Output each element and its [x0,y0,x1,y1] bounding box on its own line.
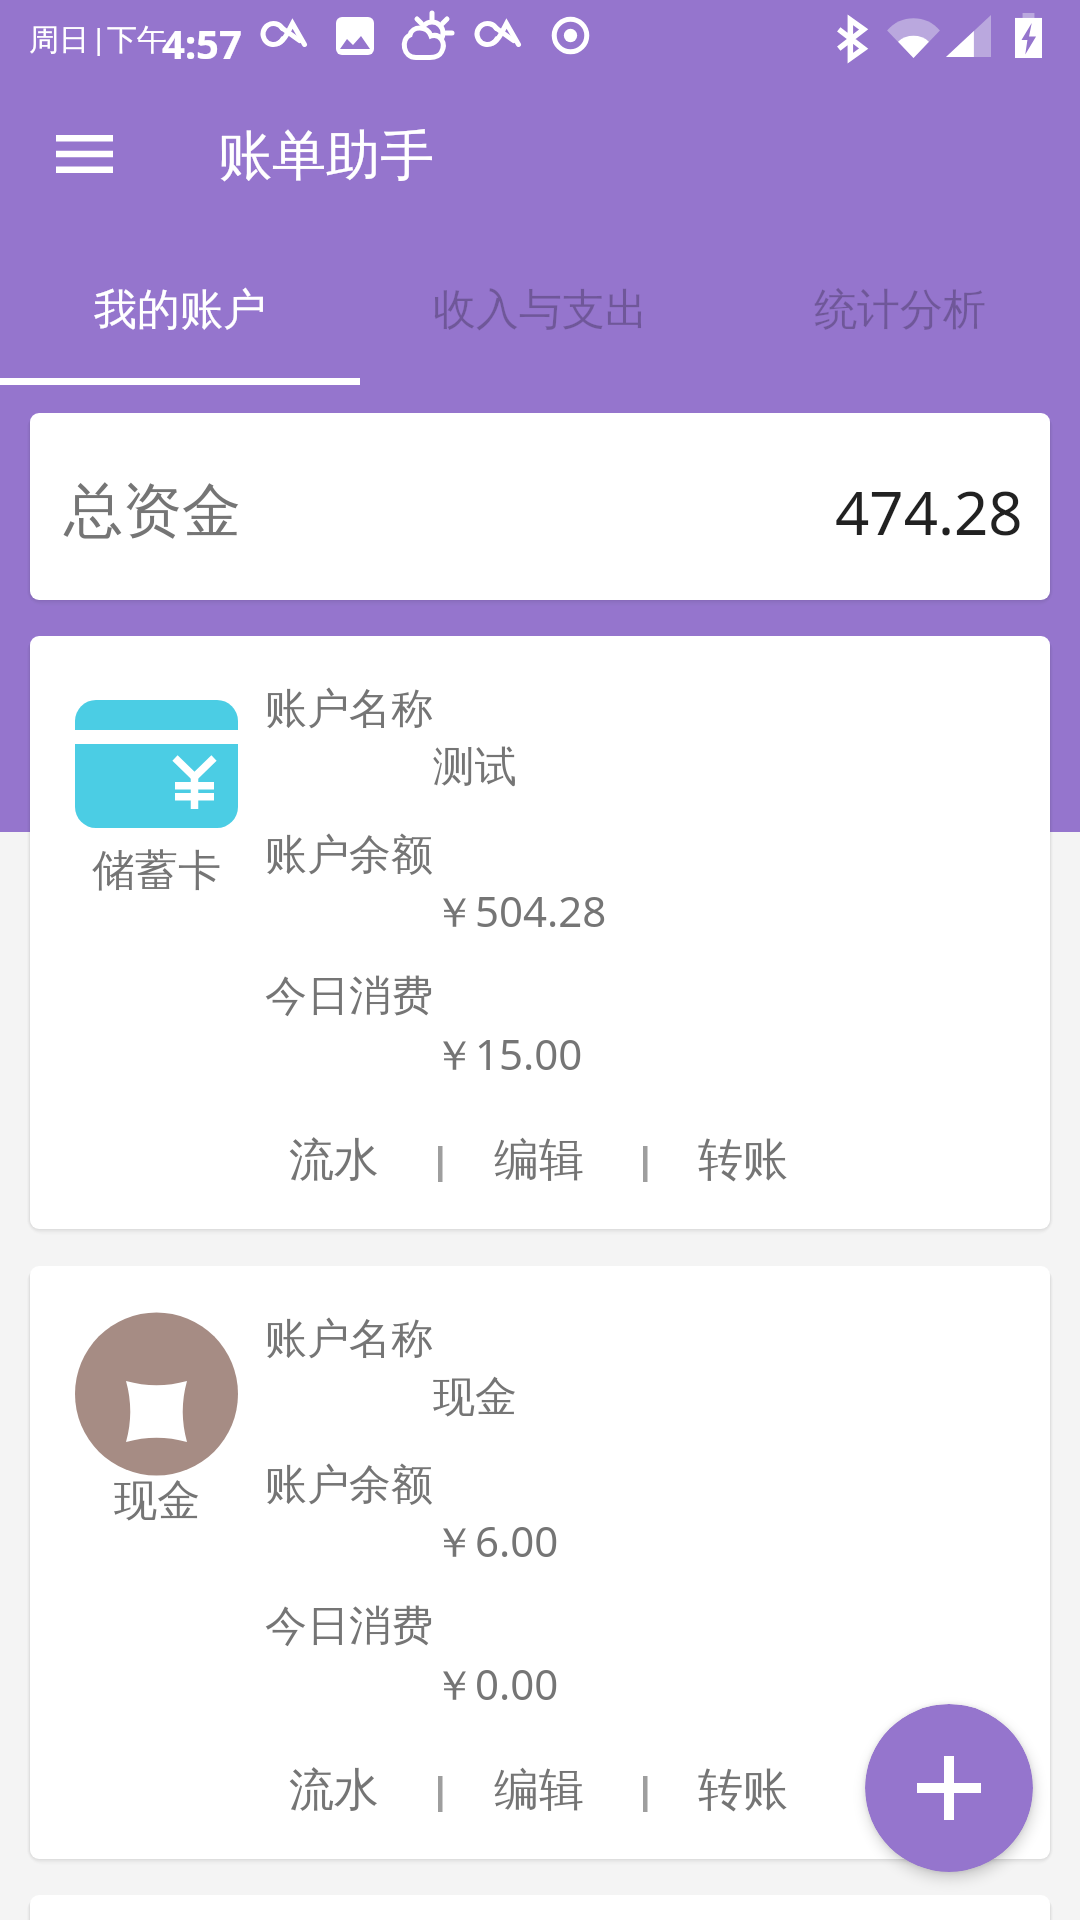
staticText: 转账 [698,1762,788,1819]
staticText: 统计分析 [814,283,986,337]
button[interactable]: 编辑 [478,1117,600,1203]
staticText: ￥6.00 [433,1512,559,1569]
button[interactable]: Add account [865,1704,1033,1872]
staticText: 474.28 [835,471,1023,553]
staticText: 收入与支出 [433,283,648,337]
staticText: 测试 [433,741,517,794]
staticText: 现金 [114,1474,200,1528]
staticText: 编辑 [494,1762,584,1819]
staticText: 账户余额 [265,829,433,882]
button[interactable]: 统计分析 [720,248,1080,371]
staticText: ￥15.00 [433,1025,583,1082]
button[interactable]: 编辑 [478,1747,600,1833]
button[interactable]: 收入与支出 [360,248,720,371]
staticText: 账户名称 [265,1313,433,1366]
button[interactable]: Menu [40,110,128,198]
staticText: 账户名称 [265,683,433,736]
staticText: 周日 [29,21,89,59]
staticText: 转账 [698,1132,788,1189]
staticText: 4:57 [162,16,242,70]
staticText: ￥0.00 [433,1655,559,1712]
staticText: 账户余额 [265,1459,433,1512]
staticText: 储蓄卡 [92,844,221,898]
staticText: 编辑 [494,1132,584,1189]
button[interactable]: 现金 [30,1266,1050,1859]
button[interactable]: 流水 [273,1747,395,1833]
button[interactable]: 储蓄卡 [30,636,1050,1229]
staticText: 今日消费 [265,1600,433,1653]
staticText: 下午 [107,21,167,59]
staticText: 现金 [433,1371,517,1424]
staticText: 账单助手 [218,122,434,190]
button[interactable]: 转账 [682,1747,804,1833]
staticText: 流水 [289,1132,379,1189]
staticText: 流水 [289,1762,379,1819]
button[interactable]: 总资金 [30,413,1050,600]
staticText: 我的账户 [94,283,266,337]
button[interactable]: 流水 [273,1117,395,1203]
staticText: ￥504.28 [433,882,607,939]
staticText: | [91,19,107,57]
button[interactable]: 我的账户 [0,248,360,371]
button[interactable]: 转账 [682,1117,804,1203]
staticText: 今日消费 [265,970,433,1023]
staticText: 总资金 [64,474,241,548]
